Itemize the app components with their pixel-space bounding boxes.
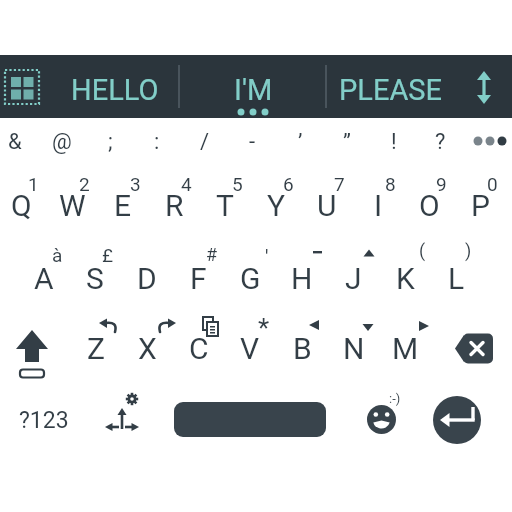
button[interactable]: T (200, 170, 250, 240)
button[interactable]: HELLO (51, 58, 179, 121)
button[interactable] (0, 304, 70, 376)
staticText: E (114, 188, 132, 223)
button[interactable]: P (455, 170, 505, 240)
button[interactable] (0, 55, 50, 118)
button[interactable]: D (122, 243, 172, 313)
button[interactable]: F (173, 243, 223, 313)
staticText: V (240, 331, 260, 366)
button[interactable]: W (47, 170, 97, 240)
staticText: C (189, 331, 209, 366)
button[interactable]: L (431, 243, 481, 313)
button[interactable]: @ (39, 120, 85, 164)
staticText: W (59, 188, 86, 223)
button[interactable]: Y (251, 170, 301, 240)
button[interactable]: E (98, 170, 148, 240)
staticText: A (34, 261, 54, 296)
button[interactable] (344, 376, 420, 448)
staticText: Z (87, 331, 105, 366)
button[interactable]: J (328, 243, 378, 313)
staticText: @ (52, 129, 72, 155)
staticText: N (343, 331, 365, 366)
button[interactable]: Q (0, 170, 46, 240)
staticText: HELLO (71, 73, 159, 107)
staticText: ’ (298, 129, 303, 155)
staticText: K (396, 261, 415, 296)
button[interactable]: B (277, 313, 327, 383)
staticText: 6 (283, 173, 294, 195)
staticText: / (200, 129, 210, 155)
staticText: Q (11, 188, 32, 223)
staticText: 4 (181, 173, 192, 195)
button[interactable]: ? (417, 120, 463, 164)
staticText: à (52, 244, 63, 266)
button[interactable]: : (134, 120, 180, 164)
button[interactable]: / (182, 120, 228, 164)
button[interactable]: U (302, 170, 352, 240)
button[interactable] (456, 55, 512, 118)
staticText: £ (102, 244, 114, 266)
staticText: R (165, 188, 184, 223)
button[interactable]: M (380, 313, 430, 383)
staticText: ? (435, 129, 446, 155)
staticText: 3 (130, 173, 141, 195)
button[interactable]: ! (371, 120, 417, 164)
button[interactable]: N (329, 313, 379, 383)
staticText: ' (265, 245, 269, 268)
staticText: 1 (28, 173, 39, 195)
staticText: - (249, 129, 256, 155)
button[interactable]: G (225, 243, 275, 313)
staticText: O (419, 188, 440, 223)
button[interactable] (442, 304, 512, 376)
staticText: B (293, 331, 312, 366)
staticText: * (258, 313, 270, 337)
staticText: L (448, 261, 465, 296)
staticText: X (138, 331, 157, 366)
button[interactable]: & (0, 120, 38, 164)
staticText: 5 (232, 173, 243, 195)
button[interactable] (88, 376, 160, 448)
button[interactable]: - (229, 120, 275, 164)
button[interactable]: H (277, 243, 327, 313)
button[interactable]: ’ (277, 120, 323, 164)
button[interactable]: I'M (181, 58, 326, 121)
staticText: I (374, 188, 383, 223)
button[interactable]: O (404, 170, 454, 240)
staticText: 7 (334, 173, 345, 195)
staticText: # (206, 244, 218, 265)
staticText: ! (391, 129, 397, 155)
staticText: & (8, 129, 22, 155)
button[interactable]: K (380, 243, 430, 313)
button[interactable]: I (353, 170, 403, 240)
staticText: 0 (487, 173, 498, 195)
button[interactable] (462, 118, 512, 162)
staticText: ?123 (19, 407, 69, 434)
staticText: ( (419, 240, 426, 261)
staticText: : (154, 129, 160, 155)
staticText: H (291, 261, 313, 296)
staticText: I'M (234, 73, 273, 107)
staticText: 8 (385, 173, 396, 195)
button[interactable]: PLEASE (327, 58, 455, 121)
staticText: J (345, 261, 362, 296)
staticText: ) (465, 240, 472, 261)
staticText: D (137, 261, 157, 296)
staticText: ” (343, 129, 351, 155)
staticText: :-) (389, 391, 401, 406)
button[interactable] (420, 376, 512, 448)
button[interactable]: R (149, 170, 199, 240)
button[interactable]: ” (324, 120, 370, 164)
staticText: PLEASE (339, 73, 443, 107)
button[interactable]: C (174, 313, 224, 383)
button[interactable]: X (122, 313, 172, 383)
button[interactable] (160, 376, 340, 448)
button[interactable]: ?123 (1, 385, 87, 455)
button[interactable]: S (70, 243, 120, 313)
button[interactable]: A (19, 243, 69, 313)
staticText: G (240, 261, 261, 296)
staticText: ; (108, 129, 113, 155)
staticText: S (86, 261, 104, 296)
button[interactable]: V (225, 313, 275, 383)
staticText: T (216, 188, 234, 223)
button[interactable]: ; (87, 120, 133, 164)
button[interactable]: Z (71, 313, 121, 383)
